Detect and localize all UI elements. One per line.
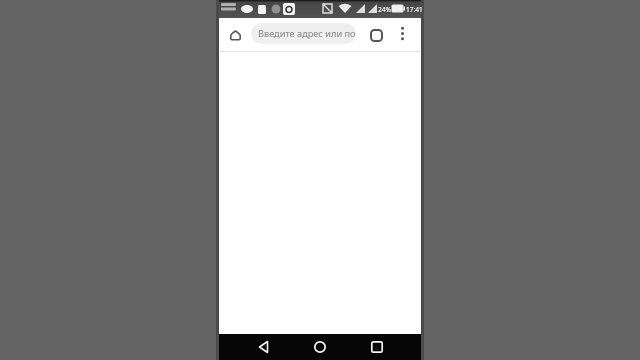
button[interactable]: [394, 25, 411, 42]
button[interactable]: [367, 337, 387, 357]
button[interactable]: [254, 337, 274, 357]
button[interactable]: [366, 25, 386, 45]
staticText: Введите адрес или по: [258, 27, 356, 40]
staticText: 17:41: [406, 5, 423, 14]
button[interactable]: [310, 337, 330, 357]
button[interactable]: [227, 27, 243, 43]
button[interactable]: Введите адрес или по: [251, 23, 356, 44]
staticText: 24%: [378, 5, 391, 14]
